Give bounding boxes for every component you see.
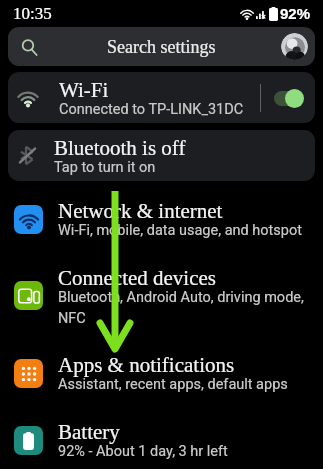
staticText: Battery (58, 420, 120, 443)
staticText: Search settings (107, 37, 216, 57)
button[interactable]: Battery (0, 407, 323, 469)
button[interactable]: Search (8, 27, 315, 66)
button[interactable]: Search (15, 33, 43, 61)
button[interactable]: Bluetooth is off (8, 130, 315, 181)
button[interactable]: Wi-Fi (8, 72, 315, 123)
staticText: 92% - About 1 day, 3 hr left (58, 443, 228, 460)
staticText: Connected to TP-LINK_31DC (59, 101, 244, 118)
button[interactable]: Wi-Fi on (273, 87, 304, 109)
staticText: 10:35 (13, 4, 52, 23)
button[interactable]: Network & internet (0, 186, 323, 253)
staticText: Wi-Fi (59, 78, 109, 101)
staticText: 92% (280, 5, 311, 22)
button[interactable]: Account (281, 33, 308, 60)
staticText: Assistant, recent apps, default apps (58, 376, 288, 393)
button[interactable]: Apps & notifications (0, 340, 323, 407)
staticText: Apps & notifications (58, 353, 235, 376)
staticText: Bluetooth is off (54, 136, 186, 159)
staticText: Network & internet (58, 199, 223, 222)
staticText: Tap to turn it on (54, 159, 156, 176)
button[interactable]: Connected devices (0, 253, 323, 340)
staticText: Connected devices (58, 266, 217, 289)
staticText: Bluetooth, Android Auto, driving mode, N… (58, 289, 311, 326)
staticText: Wi-Fi, mobile, data usage, and hotspot (58, 222, 302, 239)
